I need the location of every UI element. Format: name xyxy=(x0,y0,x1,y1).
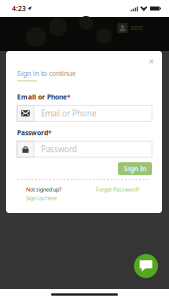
staticText: Password xyxy=(41,144,77,154)
button[interactable]: Forgot Password? xyxy=(96,186,139,193)
staticText: Password xyxy=(17,128,48,137)
button[interactable]: Not signed up? xyxy=(26,186,61,202)
staticText: * xyxy=(67,92,71,101)
button[interactable]: Sign In xyxy=(118,162,152,175)
staticText: EDIT xyxy=(131,24,143,32)
button[interactable]: Close xyxy=(145,55,158,68)
staticText: 4:23 xyxy=(12,4,26,13)
staticText: Email or Phone xyxy=(17,92,67,101)
staticText: * xyxy=(48,128,52,137)
staticText: Email or Phone xyxy=(41,108,97,119)
staticText: Not signed up? xyxy=(26,186,61,193)
staticText: Sign Up Here xyxy=(26,194,57,202)
staticText: Sign In xyxy=(124,164,146,173)
staticText: Forgot Password? xyxy=(96,186,139,193)
staticText: Sign in to continue xyxy=(17,69,76,78)
button[interactable]: Chat xyxy=(134,254,158,278)
